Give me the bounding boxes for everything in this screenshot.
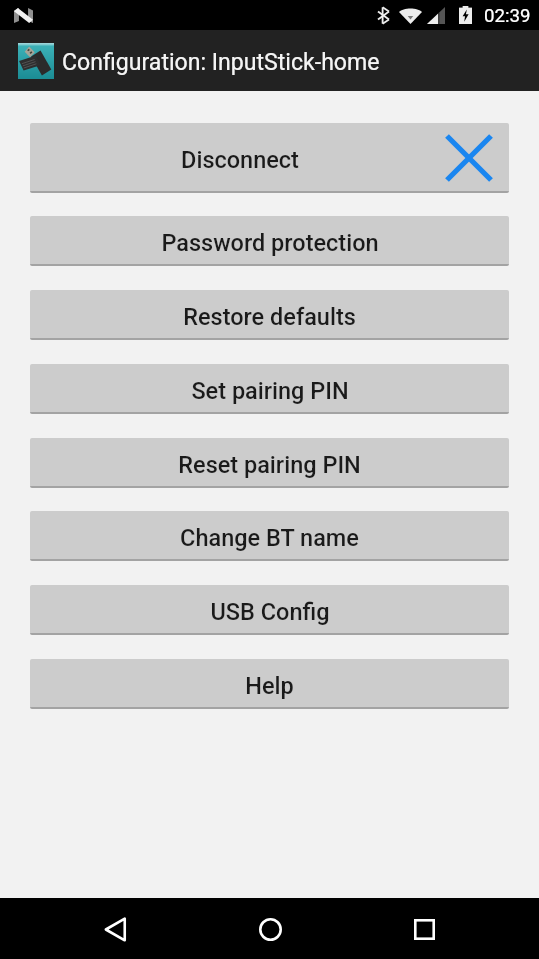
button[interactable]: Change BT name	[30, 511, 509, 561]
staticText: Change BT name	[180, 524, 359, 552]
staticText: Disconnect	[181, 146, 299, 174]
button[interactable]: Reset pairing PIN	[30, 438, 509, 488]
staticText: 02:39	[484, 5, 531, 27]
button[interactable]: Set pairing PIN	[30, 364, 509, 414]
staticText: Help	[245, 672, 294, 700]
button[interactable]: Back	[87, 901, 143, 957]
staticText: Configuration: InputStick-home	[62, 49, 380, 76]
staticText: USB Config	[210, 598, 330, 626]
button[interactable]: Home	[242, 901, 298, 957]
staticText: Set pairing PIN	[191, 377, 349, 405]
button[interactable]: USB Config	[30, 585, 509, 635]
staticText: Reset pairing PIN	[178, 451, 361, 479]
button[interactable]: Restore defaults	[30, 290, 509, 340]
button[interactable]: Recent apps	[396, 901, 452, 957]
staticText: Restore defaults	[183, 303, 356, 331]
button[interactable]: Help	[30, 659, 509, 709]
button[interactable]: Configuration: InputStick-home	[0, 30, 539, 91]
button[interactable]: Password protection	[30, 216, 509, 266]
staticText: Password protection	[161, 229, 379, 257]
button[interactable]: Disconnect	[30, 123, 509, 193]
